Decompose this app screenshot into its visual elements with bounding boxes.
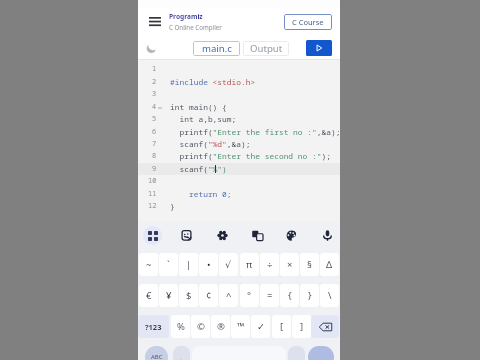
staticText: C Online Compiler: [169, 23, 222, 31]
button[interactable]: .: [288, 346, 305, 360]
button[interactable]: Menu: [144, 11, 165, 32]
button[interactable]: Stickers: [177, 226, 196, 245]
button[interactable]: `: [159, 253, 178, 276]
button[interactable]: Settings: [213, 226, 232, 245]
button[interactable]: Δ: [320, 253, 339, 276]
staticText: ~: [146, 258, 152, 271]
button[interactable]: =: [260, 284, 279, 307]
staticText: ÷: [267, 258, 273, 271]
button[interactable]: Backspace: [311, 315, 339, 338]
staticText: ¢: [206, 289, 212, 302]
staticText: ?123: [145, 322, 162, 332]
staticText: °: [247, 289, 252, 302]
staticText: 3: [152, 89, 157, 99]
staticText: #include <stdio.h>: [170, 77, 256, 88]
staticText: ¥: [166, 289, 172, 302]
staticText: scanf("%"): [170, 164, 227, 175]
staticText: |: [186, 258, 192, 271]
staticText: §: [307, 258, 312, 271]
staticText: ]: [300, 320, 304, 333]
staticText: ABC: [151, 353, 163, 360]
staticText: √: [225, 259, 232, 270]
staticText: main.c: [202, 42, 232, 55]
button[interactable]: π: [240, 253, 259, 276]
button[interactable]: ©: [191, 315, 210, 338]
staticText: 2: [152, 77, 157, 87]
staticText: C Course: [292, 17, 324, 27]
button[interactable]: Enter: [308, 346, 334, 360]
staticText: }: [170, 201, 175, 212]
staticText: ,: [180, 352, 183, 360]
button[interactable]: $: [179, 284, 198, 307]
button[interactable]: ]: [292, 315, 311, 338]
button[interactable]: Output: [243, 41, 289, 56]
button[interactable]: [: [272, 315, 291, 338]
staticText: 8: [152, 151, 157, 161]
staticText: €: [146, 289, 152, 302]
button[interactable]: ,: [173, 346, 190, 360]
staticText: \: [328, 289, 332, 302]
staticText: }: [308, 289, 312, 302]
button[interactable]: ÷: [260, 253, 279, 276]
staticText: ©: [197, 320, 205, 333]
staticText: `: [167, 258, 170, 271]
staticText: int a,b,sum;: [170, 114, 237, 125]
staticText: 6: [152, 127, 157, 137]
button[interactable]: §: [300, 253, 319, 276]
button[interactable]: |: [179, 253, 198, 276]
staticText: %: [177, 320, 185, 333]
staticText: return 0;: [170, 189, 232, 200]
button[interactable]: Dark mode: [142, 39, 160, 57]
staticText: Output: [250, 42, 283, 55]
button[interactable]: ×: [280, 253, 299, 276]
button[interactable]: ¢: [199, 284, 218, 307]
staticText: scanf("%d",&a);: [170, 139, 251, 150]
staticText: printf("Enter the second no :");: [170, 151, 331, 162]
staticText: Δ: [326, 258, 333, 271]
staticText: •: [207, 258, 211, 271]
button[interactable]: ^: [219, 284, 238, 307]
button[interactable]: €: [139, 284, 158, 307]
button[interactable]: Apps: [143, 226, 162, 245]
staticText: Programiz: [169, 12, 203, 21]
staticText: 4: [152, 102, 157, 112]
staticText: $: [186, 289, 192, 302]
button[interactable]: C Course: [284, 14, 332, 30]
button[interactable]: Voice input: [318, 226, 337, 245]
button[interactable]: ABC: [145, 346, 168, 360]
staticText: 12: [148, 201, 157, 211]
button[interactable]: •: [199, 253, 218, 276]
button[interactable]: {: [280, 284, 299, 307]
staticText: 11: [148, 189, 157, 199]
staticText: [: [280, 320, 284, 333]
button[interactable]: Translate: [248, 226, 267, 245]
button[interactable]: Run: [306, 40, 332, 56]
button[interactable]: main.c: [193, 41, 240, 56]
staticText: 10: [148, 176, 157, 186]
button[interactable]: √: [219, 253, 238, 276]
staticText: ™: [237, 320, 245, 333]
staticText: ×: [287, 258, 293, 271]
staticText: π: [246, 258, 253, 271]
button[interactable]: ?123: [138, 315, 169, 338]
button[interactable]: ~: [139, 253, 158, 276]
button[interactable]: ¥: [159, 284, 178, 307]
staticText: 1: [152, 64, 157, 74]
button[interactable]: ✓: [251, 315, 270, 338]
button[interactable]: °: [240, 284, 259, 307]
staticText: int main() {: [170, 102, 227, 113]
button[interactable]: ®: [211, 315, 230, 338]
button[interactable]: Theme: [282, 226, 301, 245]
button[interactable]: }: [300, 284, 319, 307]
staticText: 9: [152, 164, 157, 174]
staticText: ✓: [257, 321, 265, 332]
button[interactable]: %: [171, 315, 190, 338]
staticText: 5: [152, 114, 157, 124]
staticText: ®: [217, 320, 225, 333]
button[interactable]: ™: [231, 315, 250, 338]
staticText: {: [288, 289, 292, 302]
staticText: ^: [226, 289, 232, 302]
button[interactable]: \: [320, 284, 339, 307]
